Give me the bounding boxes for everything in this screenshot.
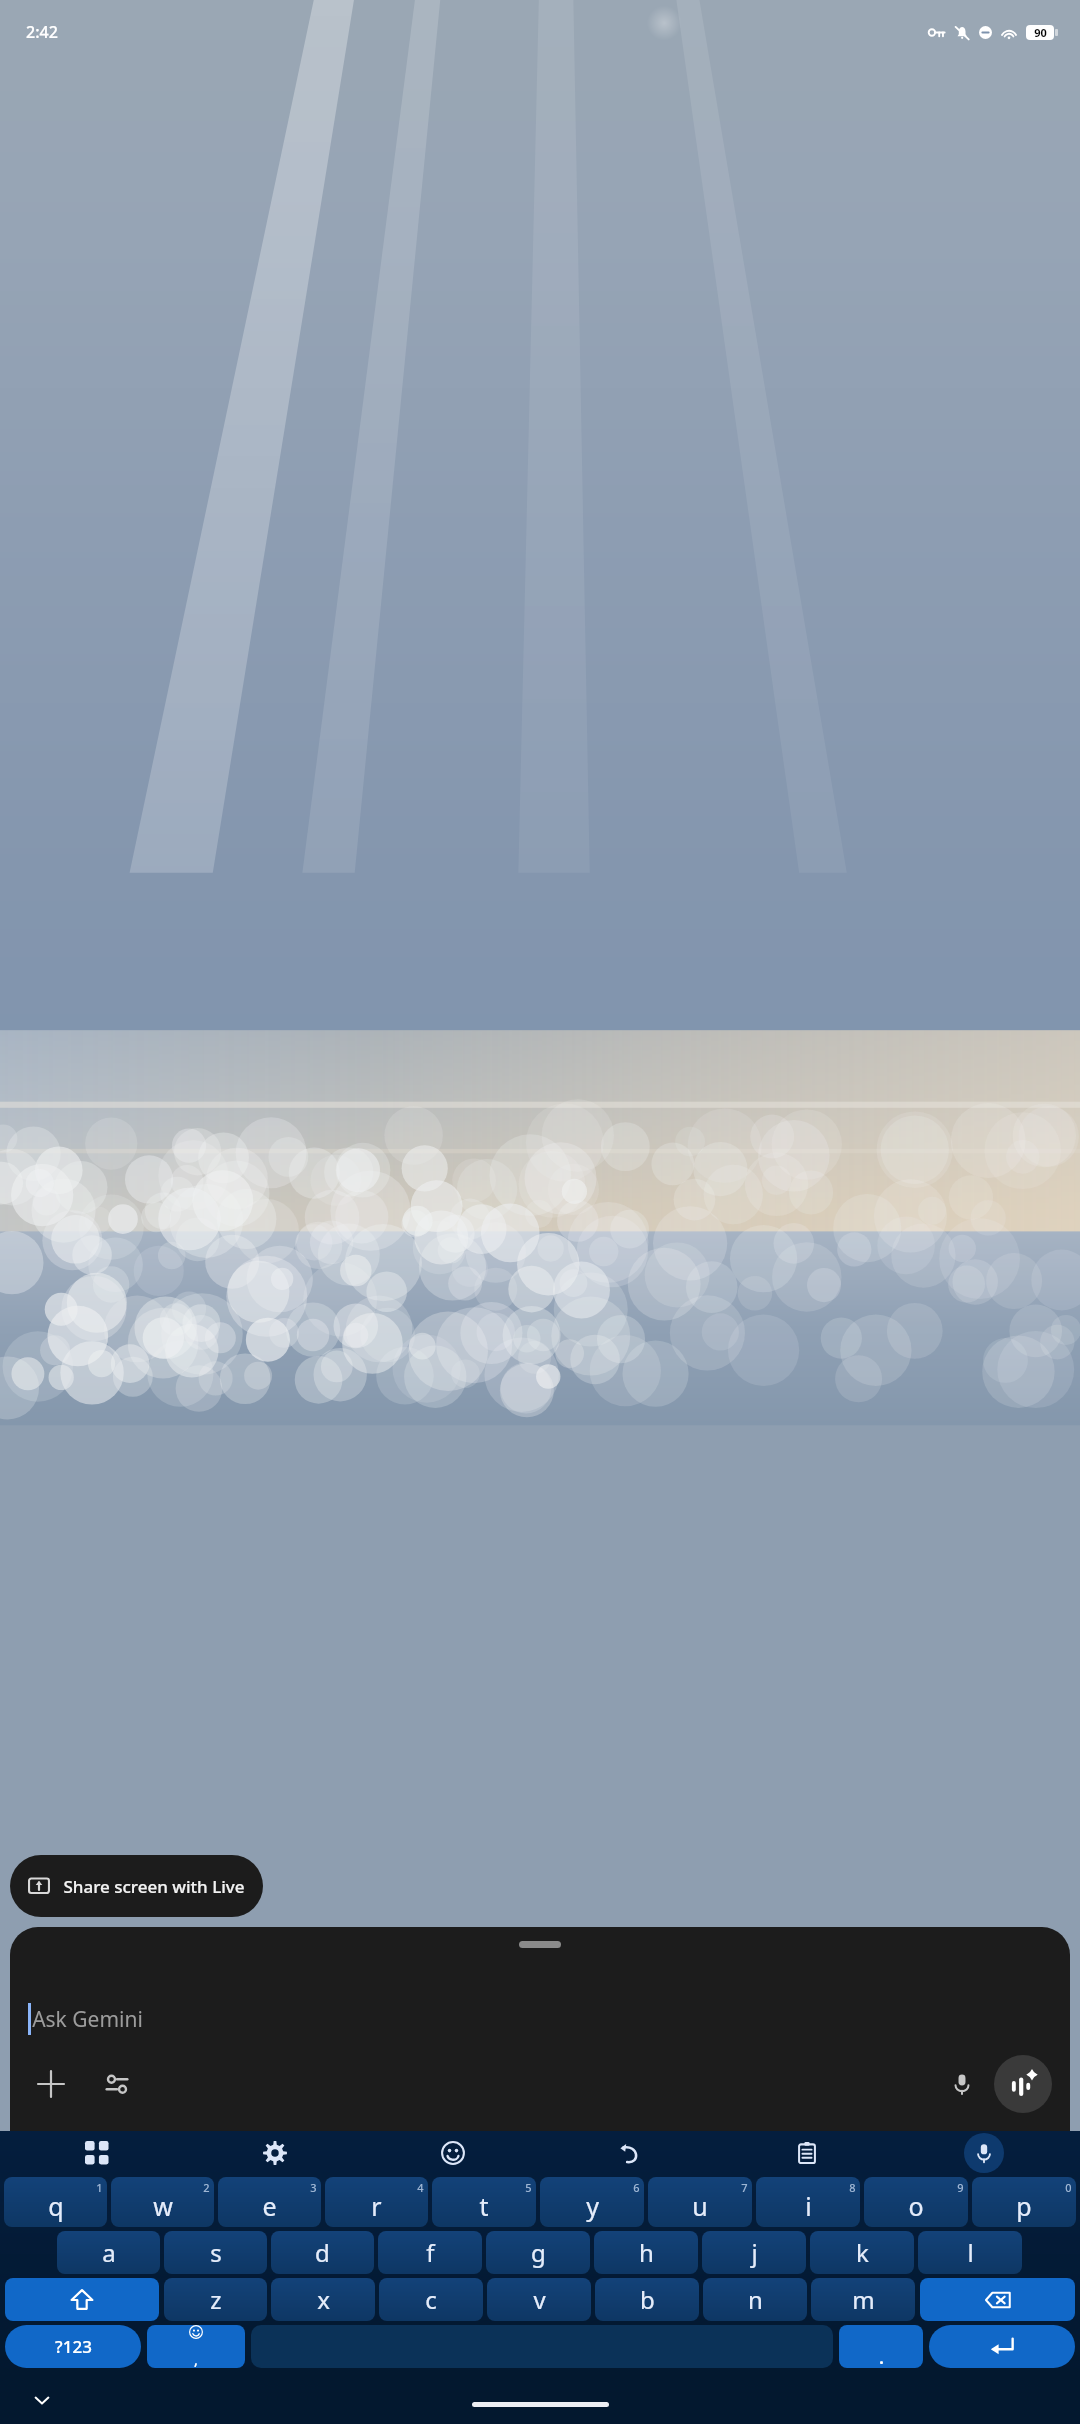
staticText: z: [210, 2283, 222, 2316]
staticText: e: [262, 2189, 277, 2223]
staticText: x: [317, 2283, 330, 2316]
staticText: f: [426, 2236, 435, 2269]
staticText: p: [1016, 2189, 1032, 2223]
staticText: j: [751, 2236, 758, 2269]
staticText: .: [879, 2347, 884, 2368]
button[interactable]: Voice input: [938, 2060, 986, 2108]
button[interactable]: Share screen with Live: [10, 1855, 263, 1917]
button[interactable]: h: [594, 2231, 698, 2274]
button[interactable]: Undo: [610, 2133, 650, 2173]
staticText: u: [692, 2189, 708, 2223]
button[interactable]: Shift: [5, 2278, 159, 2321]
button[interactable]: k: [810, 2231, 914, 2274]
button[interactable]: f: [378, 2231, 482, 2274]
other: Do not disturb: [979, 26, 992, 39]
button[interactable]: i: [756, 2177, 860, 2227]
button[interactable]: n: [703, 2278, 807, 2321]
button[interactable]: o: [864, 2177, 968, 2227]
staticText: g: [531, 2236, 546, 2269]
button[interactable]: q: [4, 2177, 107, 2227]
staticText: 2:42: [26, 21, 58, 43]
staticText: r: [371, 2189, 382, 2223]
button[interactable]: Tools: [94, 2061, 140, 2107]
staticText: 3: [310, 2180, 317, 2195]
staticText: d: [315, 2236, 330, 2269]
button[interactable]: Enter: [929, 2325, 1075, 2368]
staticText: m: [852, 2283, 875, 2316]
staticText: s: [210, 2236, 222, 2269]
staticText: w: [153, 2189, 173, 2223]
staticText: o: [908, 2189, 924, 2223]
staticText: 9: [957, 2180, 964, 2195]
staticText: h: [639, 2236, 654, 2269]
button[interactable]: Settings: [255, 2133, 295, 2173]
button[interactable]: .: [839, 2325, 923, 2368]
button[interactable]: e: [218, 2177, 321, 2227]
staticText: 7: [741, 2180, 748, 2195]
staticText: q: [48, 2189, 64, 2223]
button[interactable]: p: [972, 2177, 1076, 2227]
button[interactable]: Backspace: [920, 2278, 1075, 2321]
button[interactable]: u: [648, 2177, 752, 2227]
staticText: v: [533, 2283, 546, 2316]
staticText: 5: [525, 2180, 532, 2195]
button[interactable]: Clipboard: [787, 2133, 827, 2173]
button[interactable]: c: [379, 2278, 483, 2321]
button[interactable]: l: [918, 2231, 1022, 2274]
button[interactable]: Add: [28, 2061, 74, 2107]
button[interactable]: Hide keyboard: [22, 2380, 62, 2420]
button[interactable]: Emoji and comma: [147, 2325, 245, 2368]
button[interactable]: a: [57, 2231, 160, 2274]
button[interactable]: g: [486, 2231, 590, 2274]
button[interactable]: b: [595, 2278, 699, 2321]
button[interactable]: y: [540, 2177, 644, 2227]
button[interactable]: t: [432, 2177, 536, 2227]
button[interactable]: Emoji: [433, 2133, 473, 2173]
staticText: k: [856, 2236, 869, 2269]
staticText: ?123: [55, 2335, 92, 2358]
button[interactable]: ?123: [5, 2325, 141, 2368]
staticText: Share screen with Live: [63, 1875, 245, 1898]
button[interactable]: x: [271, 2278, 375, 2321]
button[interactable]: m: [811, 2278, 915, 2321]
other: VPN: [928, 24, 945, 41]
staticText: 90: [1034, 25, 1047, 40]
other: Wi-Fi: [1001, 25, 1017, 41]
staticText: n: [748, 2283, 763, 2316]
staticText: i: [805, 2189, 812, 2223]
staticText: 4: [417, 2180, 424, 2195]
button[interactable]: Voice typing: [964, 2133, 1004, 2173]
staticText: c: [425, 2283, 437, 2316]
button[interactable]: j: [702, 2231, 806, 2274]
button[interactable]: r: [325, 2177, 428, 2227]
staticText: 1: [96, 2180, 103, 2195]
staticText: Ask Gemini: [32, 2005, 143, 2034]
button[interactable]: Gemini Live: [994, 2055, 1052, 2113]
button[interactable]: v: [487, 2278, 591, 2321]
button[interactable]: z: [164, 2278, 267, 2321]
staticText: 2: [203, 2180, 210, 2195]
button[interactable]: w: [111, 2177, 214, 2227]
staticText: t: [479, 2189, 489, 2223]
button[interactable]: Apps: [77, 2133, 117, 2173]
staticText: a: [102, 2236, 116, 2269]
staticText: 8: [849, 2180, 856, 2195]
other: Ringer muted: [954, 25, 970, 41]
staticText: 6: [633, 2180, 640, 2195]
staticText: b: [640, 2283, 655, 2316]
button[interactable]: s: [164, 2231, 267, 2274]
button[interactable]: d: [271, 2231, 374, 2274]
staticText: 0: [1065, 2180, 1072, 2195]
staticText: ,: [194, 2350, 198, 2368]
staticText: y: [586, 2189, 599, 2223]
staticText: l: [967, 2236, 974, 2269]
